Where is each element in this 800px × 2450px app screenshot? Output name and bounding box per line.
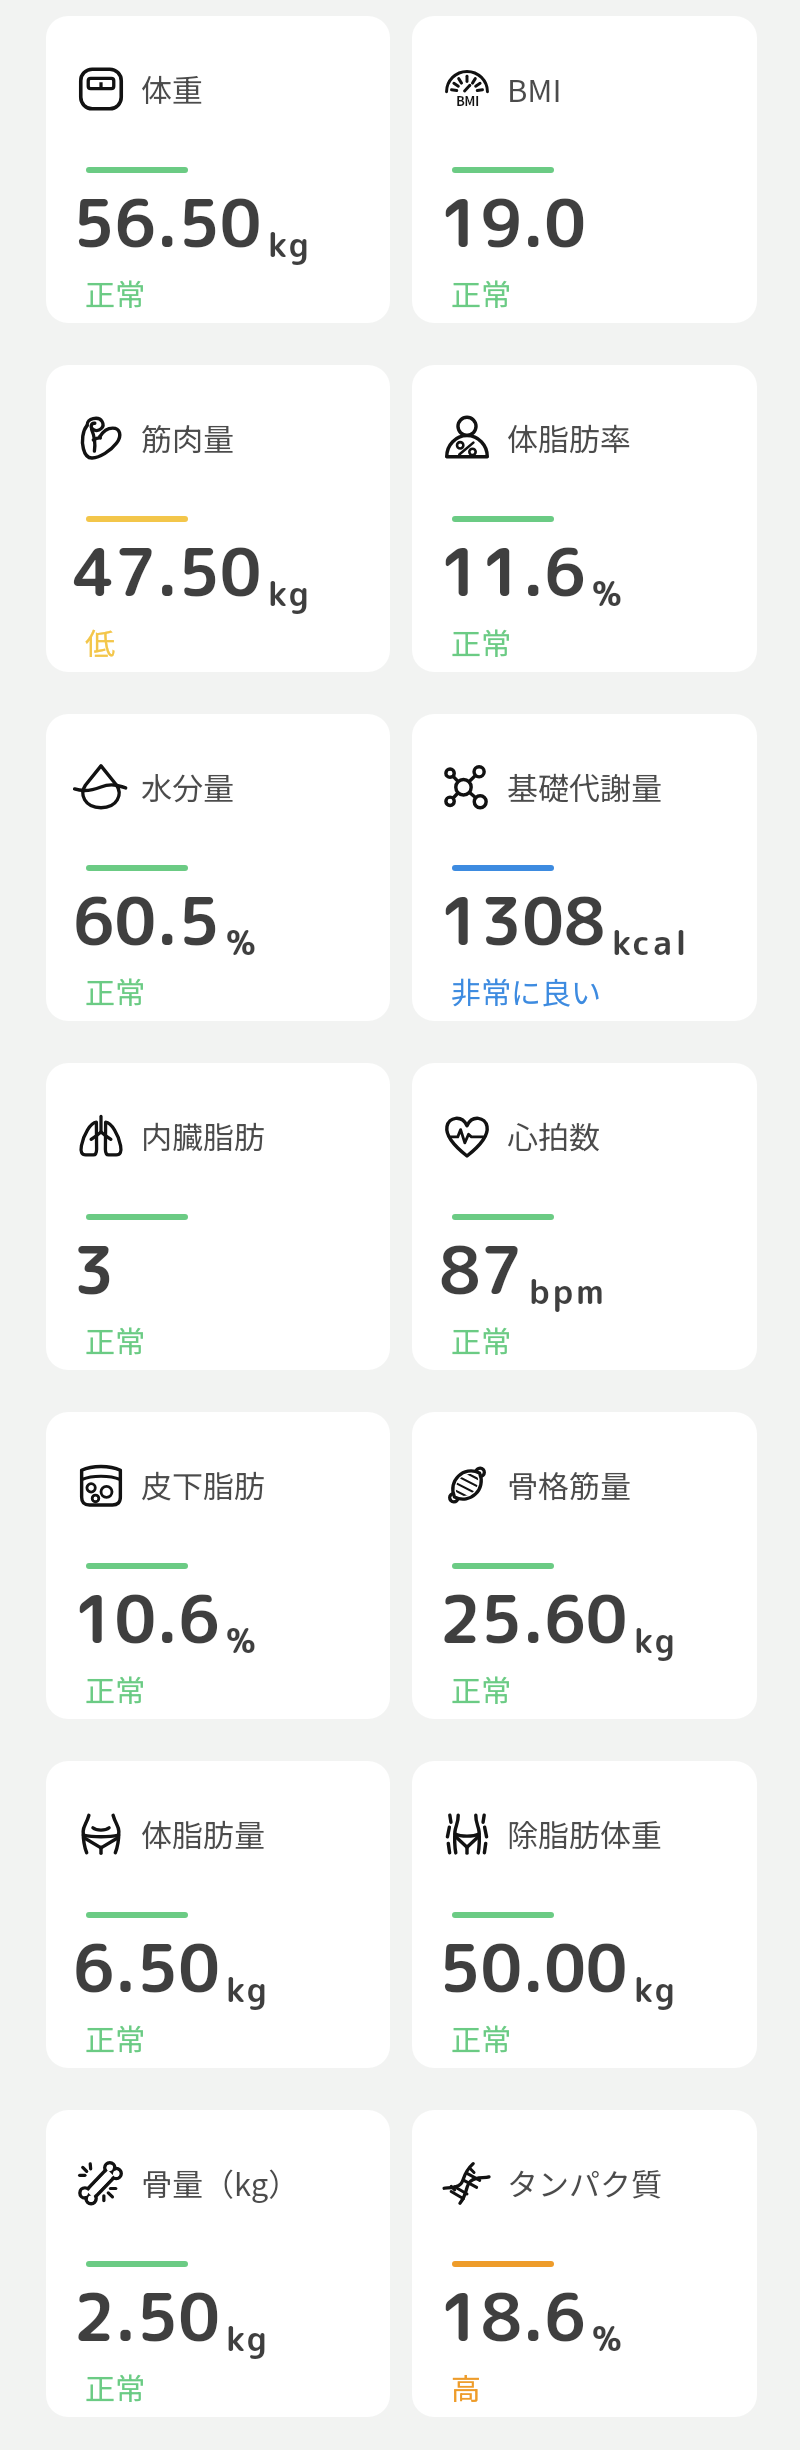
button[interactable]: 心拍数 bbox=[412, 1063, 757, 1370]
staticText: 筋肉量 bbox=[141, 415, 234, 460]
staticText: 3 bbox=[73, 1224, 115, 1315]
button[interactable]: 水分量 bbox=[46, 714, 390, 1021]
staticText: % bbox=[592, 2314, 625, 2361]
button[interactable]: 内臓脂肪 bbox=[46, 1063, 390, 1370]
staticText: 6.50 bbox=[73, 1922, 220, 2013]
staticText: 正常 bbox=[85, 271, 145, 314]
staticText: % bbox=[226, 918, 259, 965]
staticText: 正常 bbox=[451, 271, 511, 314]
staticText: % bbox=[226, 1616, 259, 1663]
staticText: 皮下脂肪 bbox=[141, 1462, 265, 1507]
staticText: kg bbox=[226, 2314, 270, 2361]
staticText: 非常に良い bbox=[451, 969, 601, 1012]
staticText: 低 bbox=[85, 620, 115, 663]
staticText: 正常 bbox=[451, 620, 511, 663]
staticText: kg bbox=[226, 1965, 270, 2012]
staticText: 基礎代謝量 bbox=[507, 764, 662, 809]
button[interactable]: 筋肉量 bbox=[46, 365, 390, 672]
staticText: 正常 bbox=[85, 969, 145, 1012]
staticText: 内臓脂肪 bbox=[141, 1113, 265, 1158]
staticText: kg bbox=[634, 1965, 678, 2012]
staticText: 正常 bbox=[451, 1318, 511, 1361]
staticText: 50.00 bbox=[439, 1922, 628, 2013]
staticText: 10.6 bbox=[73, 1573, 220, 1664]
staticText: 正常 bbox=[85, 2016, 145, 2059]
staticText: 正常 bbox=[85, 2365, 145, 2408]
staticText: kg bbox=[268, 220, 312, 267]
staticText: 体脂肪量 bbox=[141, 1811, 265, 1856]
staticText: kg bbox=[268, 569, 312, 616]
staticText: 体脂肪率 bbox=[507, 415, 631, 460]
button[interactable]: 体脂肪率 bbox=[412, 365, 757, 672]
staticText: 25.60 bbox=[439, 1573, 628, 1664]
staticText: kcal bbox=[612, 918, 690, 965]
staticText: 骨格筋量 bbox=[507, 1462, 631, 1507]
button[interactable]: 骨量（kg） bbox=[46, 2110, 390, 2417]
staticText: 心拍数 bbox=[507, 1113, 600, 1158]
staticText: 体重 bbox=[141, 66, 203, 111]
staticText: 正常 bbox=[451, 2016, 511, 2059]
staticText: kg bbox=[634, 1616, 678, 1663]
button[interactable]: タンパク質 bbox=[412, 2110, 757, 2417]
staticText: 正常 bbox=[451, 1667, 511, 1710]
staticText: 60.5 bbox=[73, 875, 220, 966]
button[interactable]: 基礎代謝量 bbox=[412, 714, 757, 1021]
staticText: 47.50 bbox=[73, 526, 262, 617]
staticText: 高 bbox=[451, 2365, 481, 2408]
button[interactable]: 体脂肪量 bbox=[46, 1761, 390, 2068]
staticText: BMI bbox=[456, 91, 479, 110]
staticText: 19.0 bbox=[439, 177, 586, 268]
staticText: 除脂肪体重 bbox=[507, 1811, 662, 1856]
staticText: 87 bbox=[439, 1224, 523, 1315]
staticText: % bbox=[592, 569, 625, 616]
staticText: 水分量 bbox=[141, 764, 234, 809]
staticText: 骨量（kg） bbox=[141, 2160, 300, 2205]
staticText: 1308 bbox=[439, 875, 606, 966]
staticText: 正常 bbox=[85, 1318, 145, 1361]
button[interactable]: 骨格筋量 bbox=[412, 1412, 757, 1719]
staticText: BMI bbox=[507, 66, 562, 111]
button[interactable]: 除脂肪体重 bbox=[412, 1761, 757, 2068]
staticText: 2.50 bbox=[73, 2271, 220, 2362]
staticText: タンパク質 bbox=[507, 2160, 662, 2205]
staticText: 正常 bbox=[85, 1667, 145, 1710]
staticText: 11.6 bbox=[439, 526, 586, 617]
staticText: 18.6 bbox=[439, 2271, 586, 2362]
button[interactable]: BMI bbox=[412, 16, 757, 323]
button[interactable]: 皮下脂肪 bbox=[46, 1412, 390, 1719]
staticText: bpm bbox=[529, 1267, 607, 1314]
staticText: 56.50 bbox=[73, 177, 262, 268]
button[interactable]: 体重 bbox=[46, 16, 390, 323]
